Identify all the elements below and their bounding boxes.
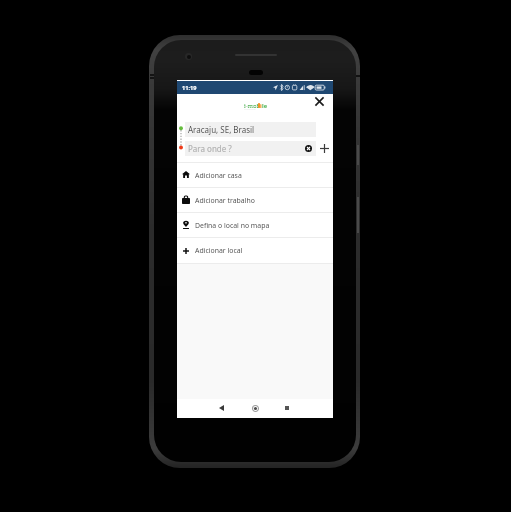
staticText: a solucao em mobilidade [244,105,265,111]
staticText: i-mob [244,102,260,110]
staticText: 11:19 [182,84,197,92]
button[interactable]: Recents [278,399,296,417]
staticText: Para onde ? [188,143,232,154]
staticText: le [262,102,265,110]
button[interactable]: Adicionar trabalho [177,188,333,212]
staticText: Adicionar casa [195,171,242,180]
button[interactable]: Adicionar local [177,238,333,263]
staticText: i [260,102,262,110]
staticText: Adicionar trabalho [195,196,255,205]
button[interactable]: Close [312,94,327,109]
staticText: Aracaju, SE, Brasil [188,124,255,135]
button[interactable]: Defina o local no mapa [177,213,333,237]
button[interactable]: Back [212,399,230,417]
button[interactable]: Clear [305,145,312,152]
button[interactable]: Adicionar casa [177,163,333,187]
button[interactable]: Aracaju, SE, Brasil [185,122,316,137]
button[interactable]: Para onde ? [185,141,316,156]
button[interactable]: Add stop [318,141,331,156]
staticText: Adicionar local [195,246,243,255]
button[interactable]: Home [246,399,264,417]
staticText: Defina o local no mapa [195,221,270,230]
